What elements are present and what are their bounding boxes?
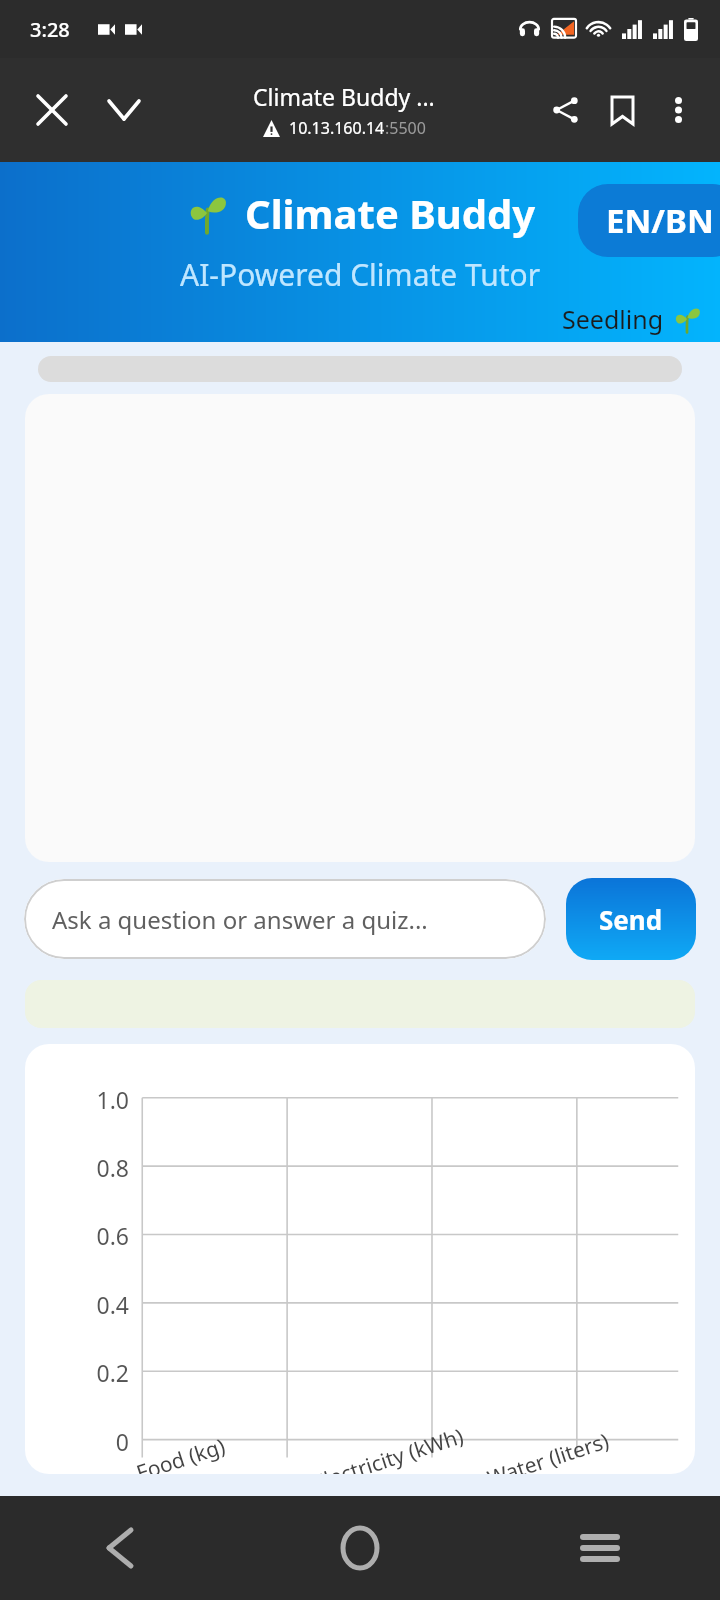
staticText: Climate Buddy ... — [253, 81, 435, 112]
button[interactable]: Send — [566, 878, 696, 960]
button[interactable]: Ask a question or answer a quiz... — [24, 879, 546, 959]
button[interactable]: Share — [538, 82, 594, 138]
staticText: Climate Buddy — [245, 186, 536, 240]
button[interactable]: EN/BN — [578, 184, 720, 257]
button[interactable]: Minimize — [98, 84, 150, 136]
button[interactable]: More options — [650, 82, 706, 138]
staticText: Send — [599, 902, 663, 937]
staticText: 3:28 — [30, 16, 70, 43]
button[interactable]: Recent apps — [480, 1496, 720, 1600]
button[interactable]: Bookmark — [594, 82, 650, 138]
staticText: 0 — [115, 1426, 129, 1457]
button[interactable]: Close — [26, 84, 78, 136]
staticText: 0.8 — [96, 1152, 129, 1183]
staticText: Food (kg) — [133, 1431, 229, 1474]
staticText: 0.6 — [96, 1220, 129, 1251]
staticText: AI-Powered Climate Tutor — [180, 254, 541, 295]
staticText: Water (liters) — [484, 1426, 613, 1474]
staticText: Ask a question or answer a quiz... — [52, 903, 428, 936]
staticText: 0.4 — [96, 1289, 129, 1320]
staticText: 0.2 — [96, 1357, 129, 1388]
staticText: :5500 — [385, 117, 426, 139]
staticText: 1.0 — [96, 1084, 129, 1115]
button[interactable]: Back — [0, 1496, 240, 1600]
staticText: 10.13.160.14 — [289, 117, 385, 139]
staticText: EN/BN — [606, 198, 714, 243]
button[interactable]: Home — [240, 1496, 480, 1600]
staticText: Seedling — [562, 302, 664, 336]
staticText: Electricity (kWh) — [309, 1421, 468, 1474]
